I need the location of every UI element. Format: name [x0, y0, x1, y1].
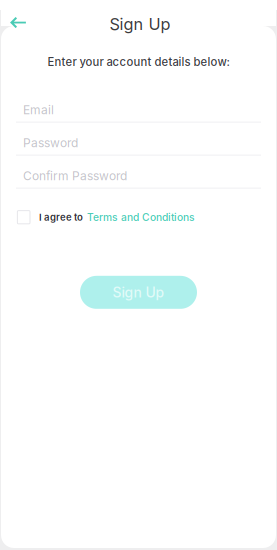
button[interactable]: Sign Up [80, 276, 197, 309]
staticText: Sign Up [109, 14, 170, 34]
button[interactable]: Terms and Conditions [87, 211, 195, 223]
staticText: Password [23, 136, 78, 150]
staticText: Sign Up [112, 284, 164, 301]
button[interactable]: Agree to the terms and conditions [17, 211, 30, 224]
staticText: Terms and Conditions [87, 211, 195, 223]
button[interactable]: Back [3, 7, 33, 37]
staticText: Confirm Password [23, 169, 127, 183]
staticText: I agree to [39, 211, 83, 223]
staticText: Email [23, 103, 54, 117]
staticText: Enter your account details below: [47, 55, 229, 69]
